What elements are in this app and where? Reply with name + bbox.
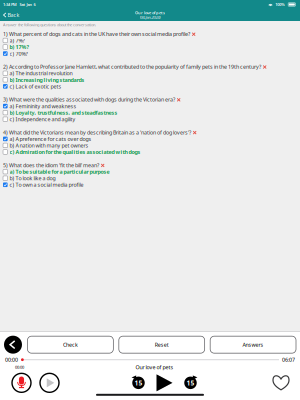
staticText: a) 7%?: [10, 37, 25, 44]
staticText: a) The industrial revolution: [10, 70, 73, 77]
button[interactable]: b) Loyalty, trustfulness, and steadfastn…: [3, 109, 297, 116]
staticText: a) Femininity and weakness: [10, 102, 77, 110]
button[interactable]: Play recording: [39, 372, 60, 393]
button[interactable]: b) Increasing living standards: [3, 77, 297, 83]
button[interactable]: c) Independence and agility: [3, 116, 297, 122]
button[interactable]: b) 17%?: [3, 44, 297, 50]
staticText: c) 70%?: [10, 50, 28, 57]
staticText: 06:07: [282, 356, 295, 363]
button[interactable]: a) To be suitable for a particular purpo…: [3, 168, 297, 175]
staticText: Sat Jan 6: [19, 2, 35, 7]
button[interactable]: Record: [11, 372, 32, 393]
button[interactable]: Previous: [4, 336, 22, 354]
staticText: 15: [186, 379, 194, 387]
button[interactable]: b) To look like a dog: [3, 175, 297, 181]
staticText: 3) What were the qualities associated wi…: [3, 96, 175, 103]
staticText: a) To be suitable for a particular purpo…: [10, 168, 110, 175]
button[interactable]: b) A nation with many pet owners: [3, 142, 297, 149]
button[interactable]: Reset: [119, 336, 205, 353]
button[interactable]: a) A preference for cats over dogs: [3, 136, 297, 142]
button[interactable]: c) To own a social media profile: [3, 181, 297, 188]
button[interactable]: a) 7%?: [3, 37, 297, 44]
staticText: (04-Jan-2024): [139, 15, 160, 20]
staticText: Reset: [155, 341, 169, 348]
button[interactable]: Play: [146, 374, 182, 391]
staticText: Answer the following questions about the…: [3, 22, 96, 27]
staticText: b) To look like a dog: [10, 175, 56, 182]
staticText: c) Lack of exotic pets: [10, 83, 62, 90]
staticText: 1) What percent of dogs and cats in the …: [3, 30, 190, 37]
button[interactable]: Back: [0, 9, 23, 21]
staticText: b) Loyalty, trustfulness, and steadfastn…: [10, 109, 118, 116]
button[interactable]: a) The industrial revolution: [3, 70, 297, 76]
staticText: 2) According to Professor Jane Hamlett, …: [3, 63, 261, 70]
staticText: b) 17%?: [10, 43, 30, 51]
staticText: Check: [63, 341, 78, 348]
button[interactable]: Skip back 15 seconds: [130, 375, 146, 391]
staticText: c) To own a social media profile: [10, 181, 84, 188]
button[interactable]: Skip forward 15 seconds: [182, 375, 198, 391]
staticText: 00:00: [15, 365, 24, 370]
button[interactable]: c) Lack of exotic pets: [3, 83, 297, 90]
staticText: 00:00: [5, 356, 18, 363]
button[interactable]: c) 70%?: [3, 50, 297, 57]
staticText: 5) What does the idiom 'fit the bill' me…: [3, 162, 99, 169]
staticText: 1:34 PM: [3, 2, 17, 7]
staticText: b) A nation with many pet owners: [10, 142, 89, 149]
staticText: Answers: [243, 341, 264, 348]
staticText: b) Increasing living standards: [10, 76, 85, 83]
button[interactable]: Check: [27, 336, 113, 353]
staticText: c) Admiration for the qualities associat…: [10, 148, 141, 155]
button[interactable]: c) Admiration for the qualities associat…: [3, 149, 297, 155]
button[interactable]: Favourite: [269, 372, 293, 394]
staticText: Our love of pets: [135, 364, 173, 371]
staticText: 15: [134, 379, 142, 387]
staticText: 100%: [275, 2, 285, 7]
staticText: Back: [7, 11, 19, 19]
staticText: 4) What did the Victorians mean by descr…: [3, 129, 191, 136]
staticText: c) Independence and agility: [10, 116, 76, 123]
staticText: a) A preference for cats over dogs: [10, 135, 92, 142]
staticText: Our love of pets: [135, 10, 165, 15]
button[interactable]: a) Femininity and weakness: [3, 103, 297, 109]
button[interactable]: Answers: [210, 336, 296, 353]
